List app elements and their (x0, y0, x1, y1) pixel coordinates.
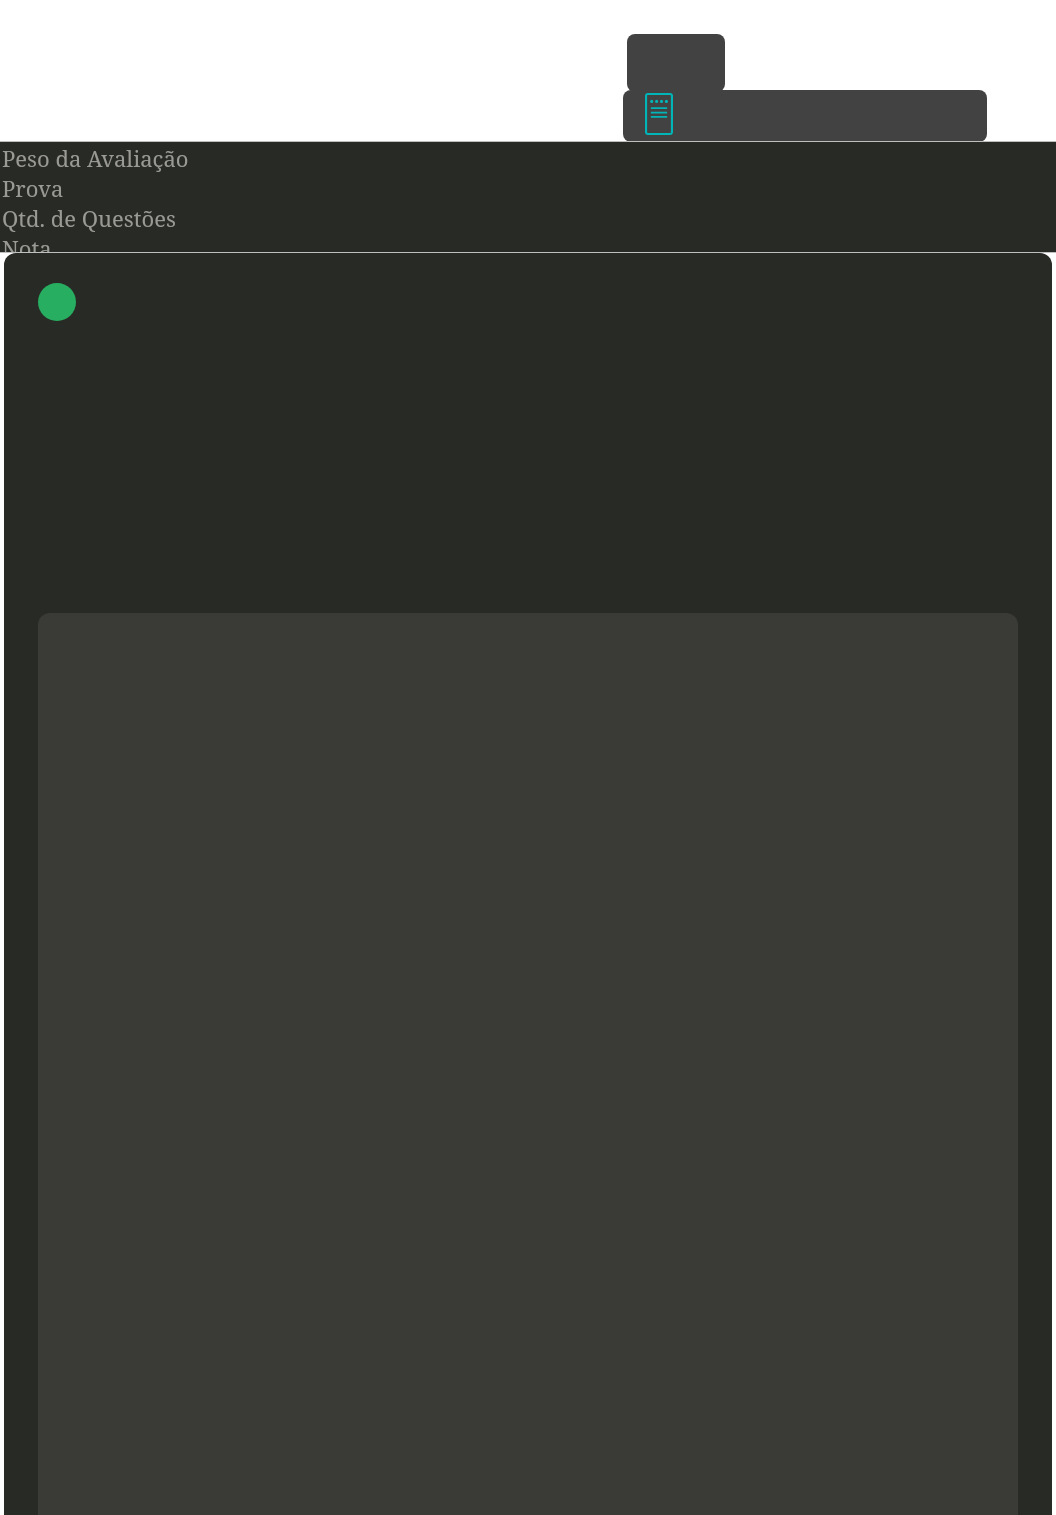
button[interactable]: Document (645, 93, 673, 135)
staticText: Peso da Avaliação (2, 143, 189, 173)
staticText: Nota (2, 233, 52, 252)
button[interactable]: Document (623, 90, 987, 142)
button[interactable]: Status (38, 283, 76, 321)
staticText: Prova (2, 173, 64, 203)
staticText: Qtd. de Questões (2, 203, 176, 233)
button[interactable]: Menu panel (627, 34, 725, 92)
